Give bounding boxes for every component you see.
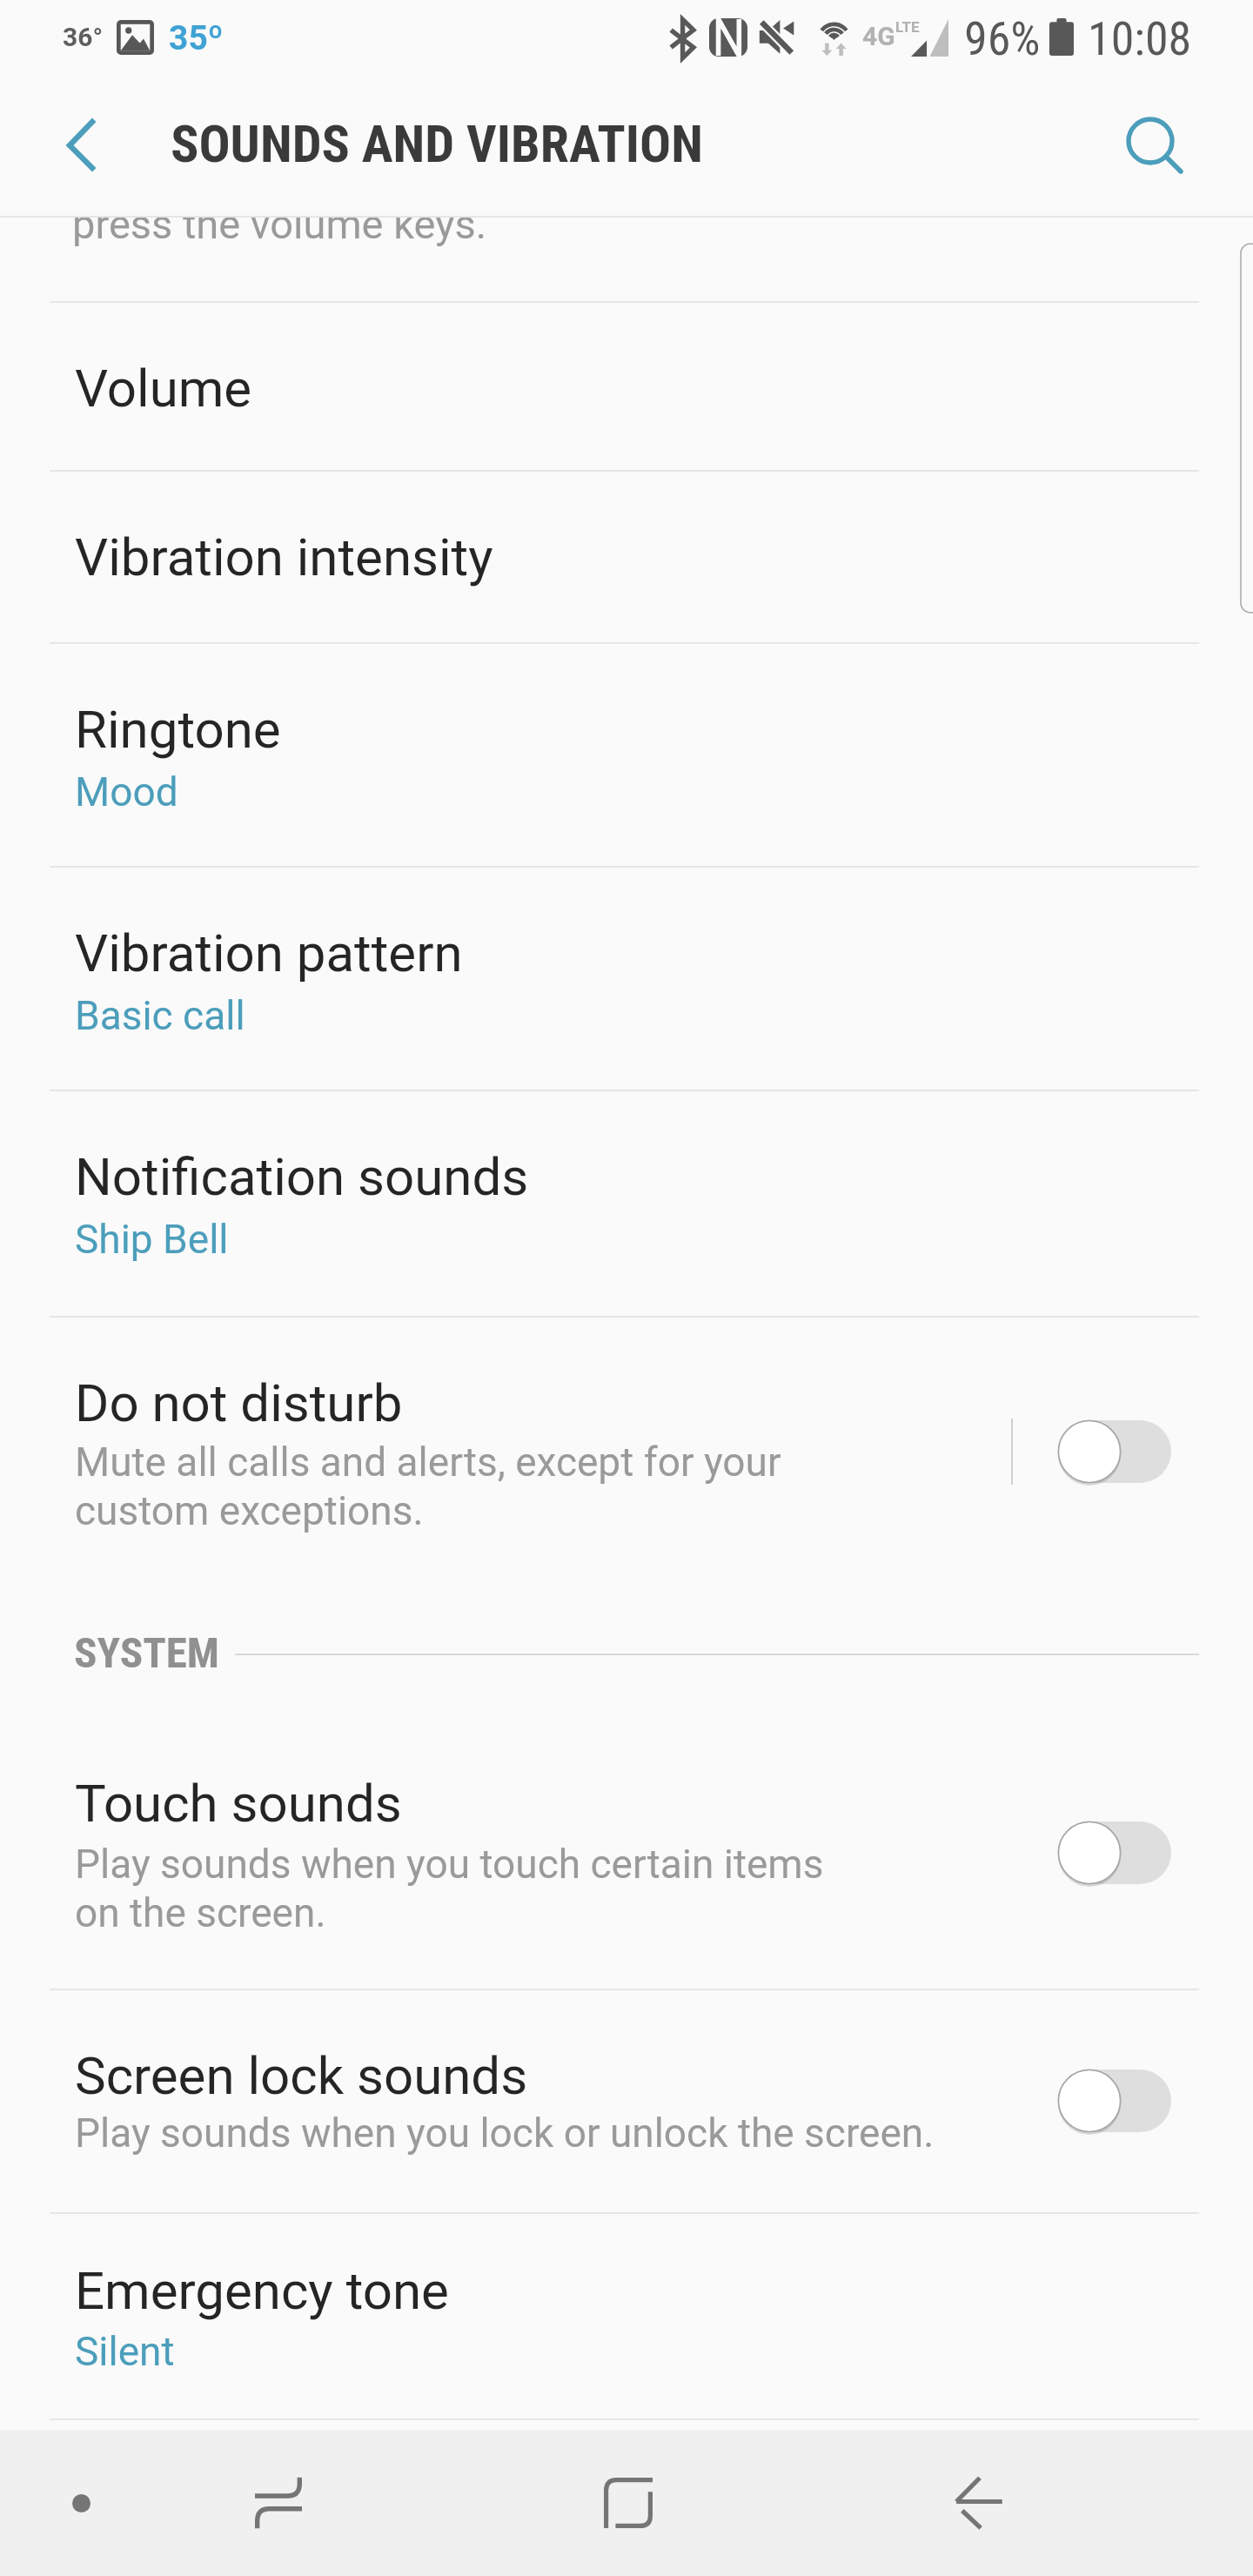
button[interactable]: Search (1095, 88, 1215, 218)
staticText: Do not disturb (75, 1372, 403, 1433)
staticText: Vibration intensity (75, 527, 493, 587)
button[interactable]: Notification sounds (0, 1091, 1253, 1316)
staticText: SOUNDS AND VIBRATION (171, 113, 704, 174)
button[interactable]: Touch sounds switch, off (1001, 1774, 1253, 1931)
button[interactable]: Ringtone (0, 644, 1253, 866)
staticText: Emergency tone (75, 2260, 449, 2321)
staticText: 10:08 (1088, 11, 1192, 66)
button[interactable]: Screen lock sounds switch, off (1001, 2023, 1253, 2179)
button[interactable]: Back (905, 2430, 1055, 2576)
button[interactable]: Emergency tone (0, 2214, 1253, 2418)
staticText: Play sounds when you lock or unlock the … (75, 2110, 935, 2157)
staticText: Screen lock sounds (75, 2045, 528, 2106)
staticText: Play sounds when you touch certain items (75, 1841, 824, 1888)
staticText: 96% (964, 11, 1041, 66)
button[interactable]: Vibration pattern (0, 868, 1253, 1090)
button[interactable]: Navigate up (12, 88, 129, 218)
staticText: 36° (63, 22, 104, 52)
staticText: 35º (169, 18, 224, 58)
staticText: Notification sounds (75, 1146, 529, 1207)
button[interactable]: Vibration intensity (0, 472, 1253, 642)
button[interactable]: Screen lock sounds (0, 1990, 1253, 2212)
staticText: Volume (75, 358, 252, 419)
staticText: Mute all calls and alerts, except for yo… (75, 1439, 781, 1486)
staticText: Vibration pattern (75, 922, 463, 983)
staticText: Ship Bell (75, 1216, 229, 1263)
staticText: Ringtone (75, 699, 281, 760)
staticText: Silent (75, 2328, 175, 2375)
staticText: on the screen. (75, 1889, 326, 1936)
button[interactable]: Touch sounds (0, 1732, 1253, 1989)
button[interactable]: Do not disturb switch, off (1001, 1373, 1253, 1530)
button[interactable]: Volume (0, 303, 1253, 470)
staticText: LTE (895, 18, 920, 36)
staticText: Basic call (75, 992, 245, 1039)
staticText: press the volume keys. (72, 218, 487, 248)
staticText: Touch sounds (75, 1773, 402, 1834)
button[interactable]: Recent apps (198, 2430, 358, 2576)
staticText: SYSTEM (74, 1628, 219, 1678)
button[interactable]: Menu (7, 2430, 155, 2576)
button[interactable]: Home (552, 2430, 705, 2576)
staticText: 4G (862, 21, 895, 51)
staticText: Mood (75, 768, 178, 815)
button[interactable]: Do not disturb (0, 1318, 1253, 1580)
staticText: custom exceptions. (75, 1487, 424, 1534)
